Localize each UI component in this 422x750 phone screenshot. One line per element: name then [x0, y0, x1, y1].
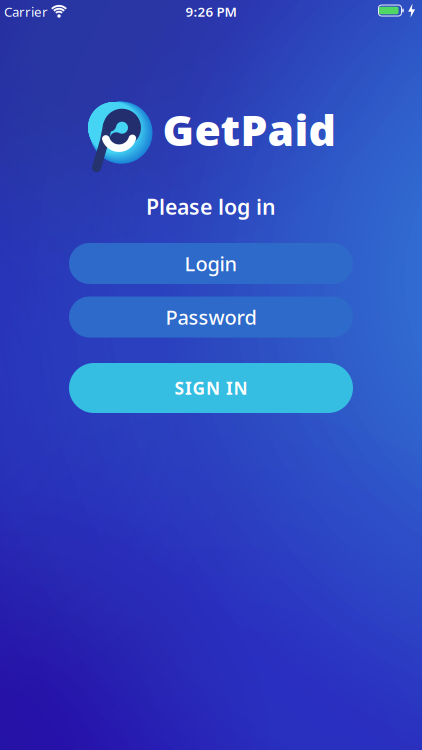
button[interactable]: Login [69, 243, 353, 284]
staticText: Password [165, 304, 256, 330]
staticText: Carrier [4, 3, 48, 20]
staticText: GetPaid [162, 101, 335, 158]
staticText: Please log in [146, 192, 276, 221]
staticText: Login [184, 250, 237, 277]
staticText: SIGN IN [174, 376, 247, 399]
button[interactable]: SIGN IN [69, 363, 353, 413]
button[interactable]: Password [69, 296, 353, 337]
staticText: 9:26 PM [185, 3, 236, 20]
